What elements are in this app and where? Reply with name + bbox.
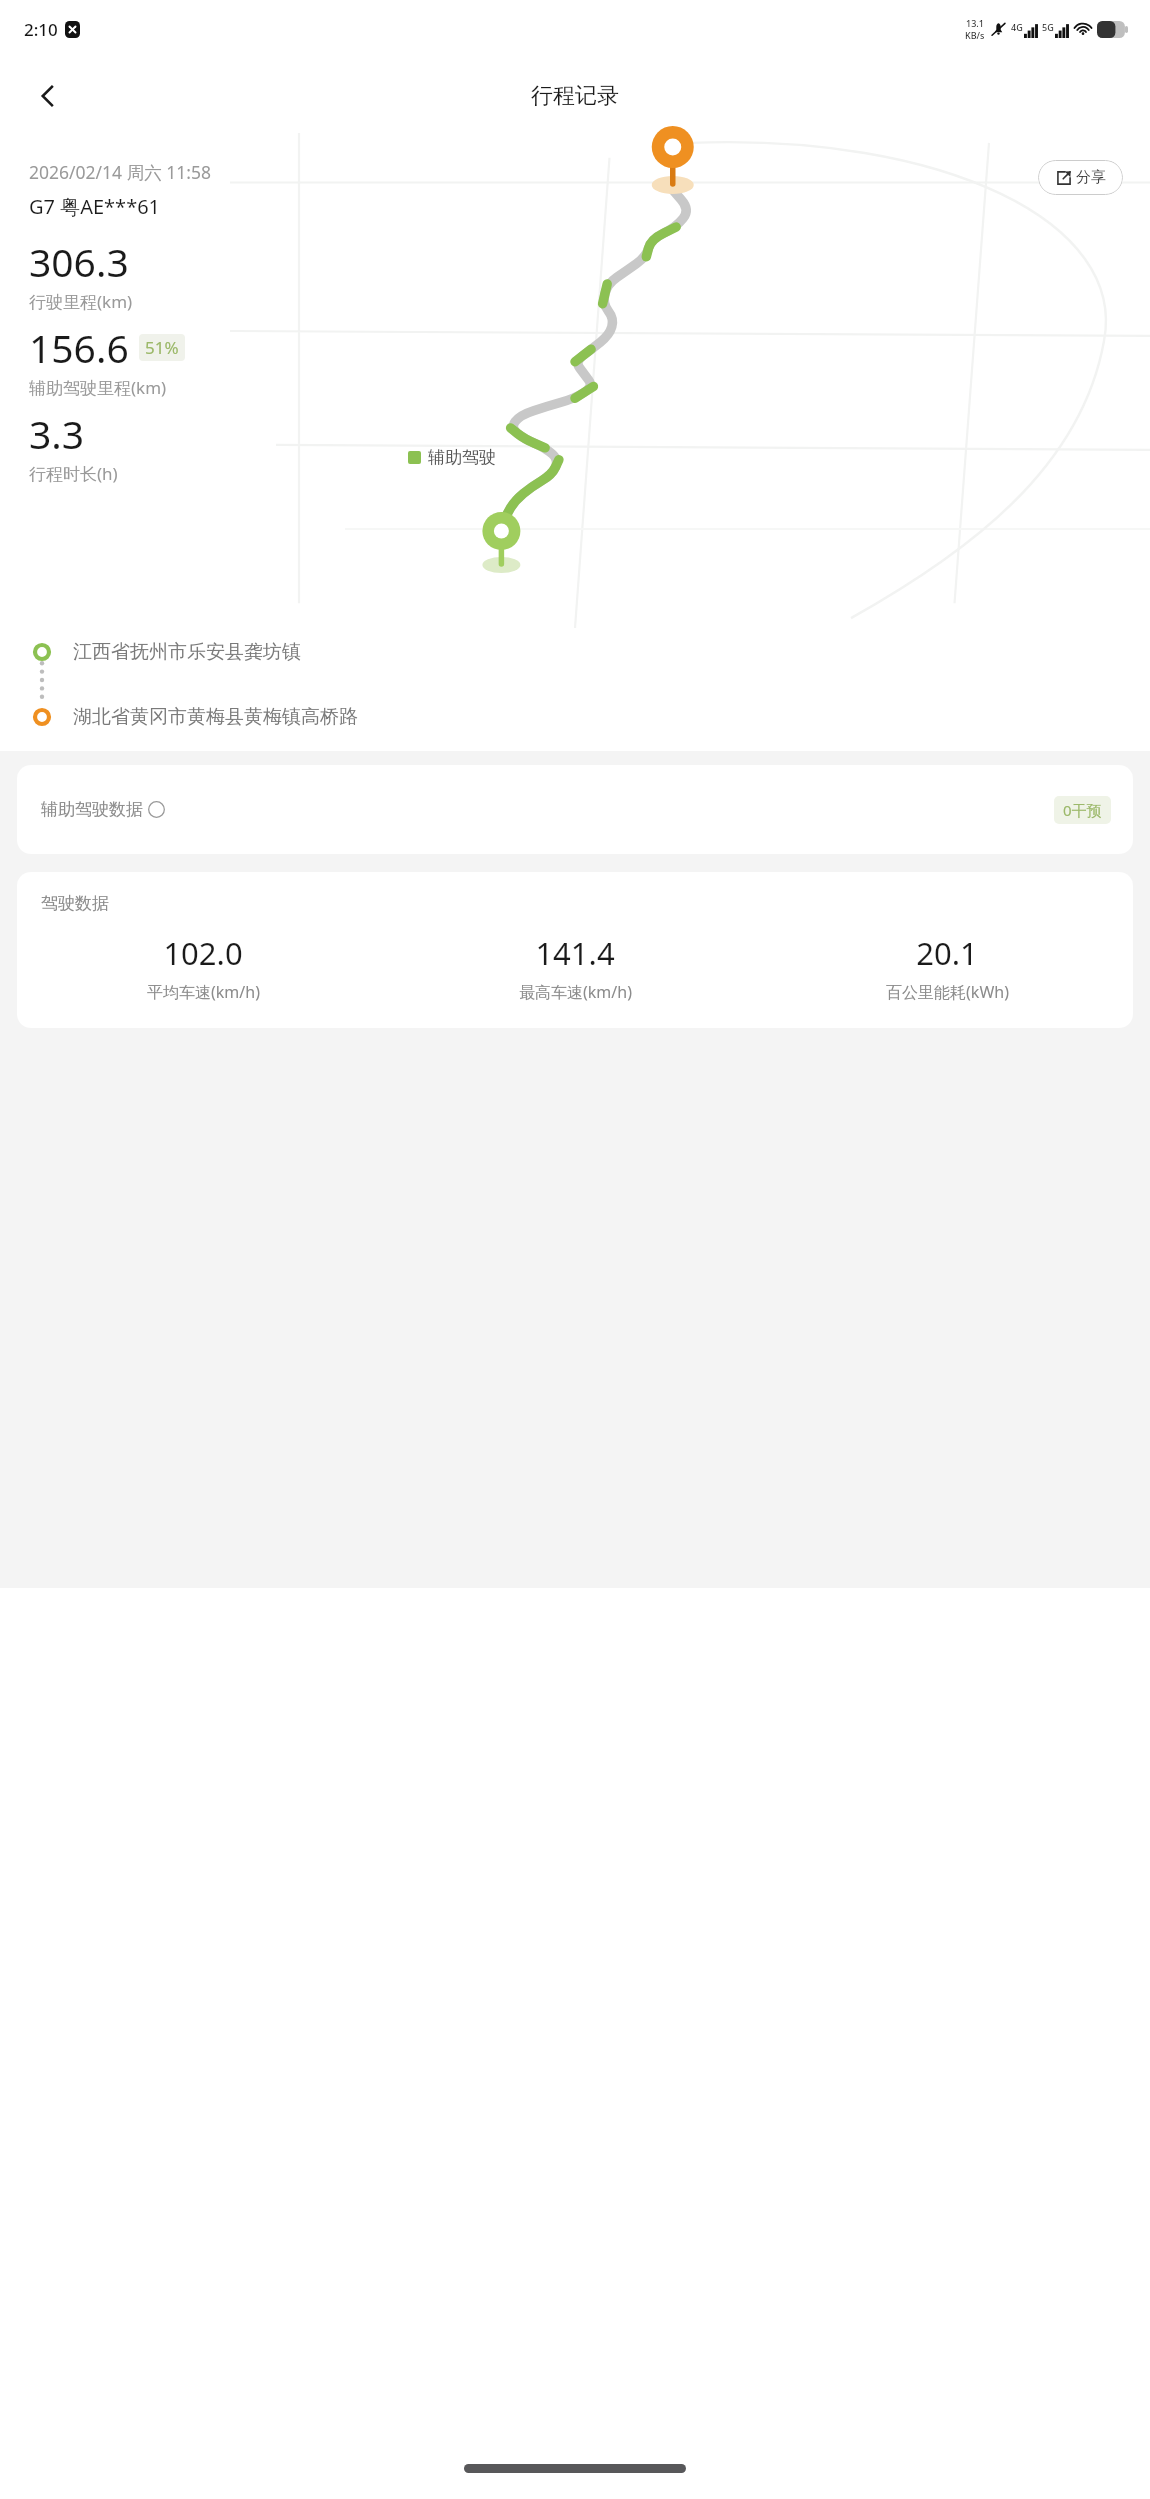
staticText: 江西省抚州市乐安县龚坊镇 [73,640,301,664]
staticText: 百公里能耗(kWh) [886,981,1009,1003]
staticText: 141.4 [535,932,615,974]
staticText: 最高车速(km/h) [519,981,632,1003]
staticText: 辅助驾驶数据 [41,799,143,820]
staticText: 102.0 [163,932,243,974]
staticText: 306.3 [29,235,129,288]
staticText: 行程记录 [531,82,619,110]
staticText: 5G [1042,21,1054,33]
button[interactable]: 驾驶数据 [17,872,1133,1028]
staticText: 20.1 [916,932,978,974]
staticText: 51% [145,336,179,359]
staticText: KB/s [965,29,985,41]
staticText: 2:10 [24,18,58,41]
staticText: 平均车速(km/h) [147,981,260,1003]
staticText: 辅助驾驶里程(km) [29,376,167,399]
staticText: 驾驶数据 [41,893,109,914]
staticText: 13.1 [966,17,984,29]
button[interactable]: 辅助驾驶数据 [17,765,1133,854]
button[interactable]: Back [22,70,74,122]
staticText: 辅助驾驶 [428,447,496,468]
staticText: G7 粤AE***61 [29,193,161,220]
staticText: 行驶里程(km) [29,290,133,313]
staticText: 行程时长(h) [29,462,118,485]
staticText: 3.3 [29,407,85,460]
staticText: 156.6 [29,321,129,374]
staticText: 4G [1011,21,1023,33]
button[interactable]: 分享 [1038,160,1123,195]
staticText: 分享 [1076,168,1106,187]
staticText: 2026/02/14 周六 11:58 [29,160,211,184]
staticText: 0干预 [1063,800,1102,820]
staticText: 湖北省黄冈市黄梅县黄梅镇高桥路 [73,705,358,729]
